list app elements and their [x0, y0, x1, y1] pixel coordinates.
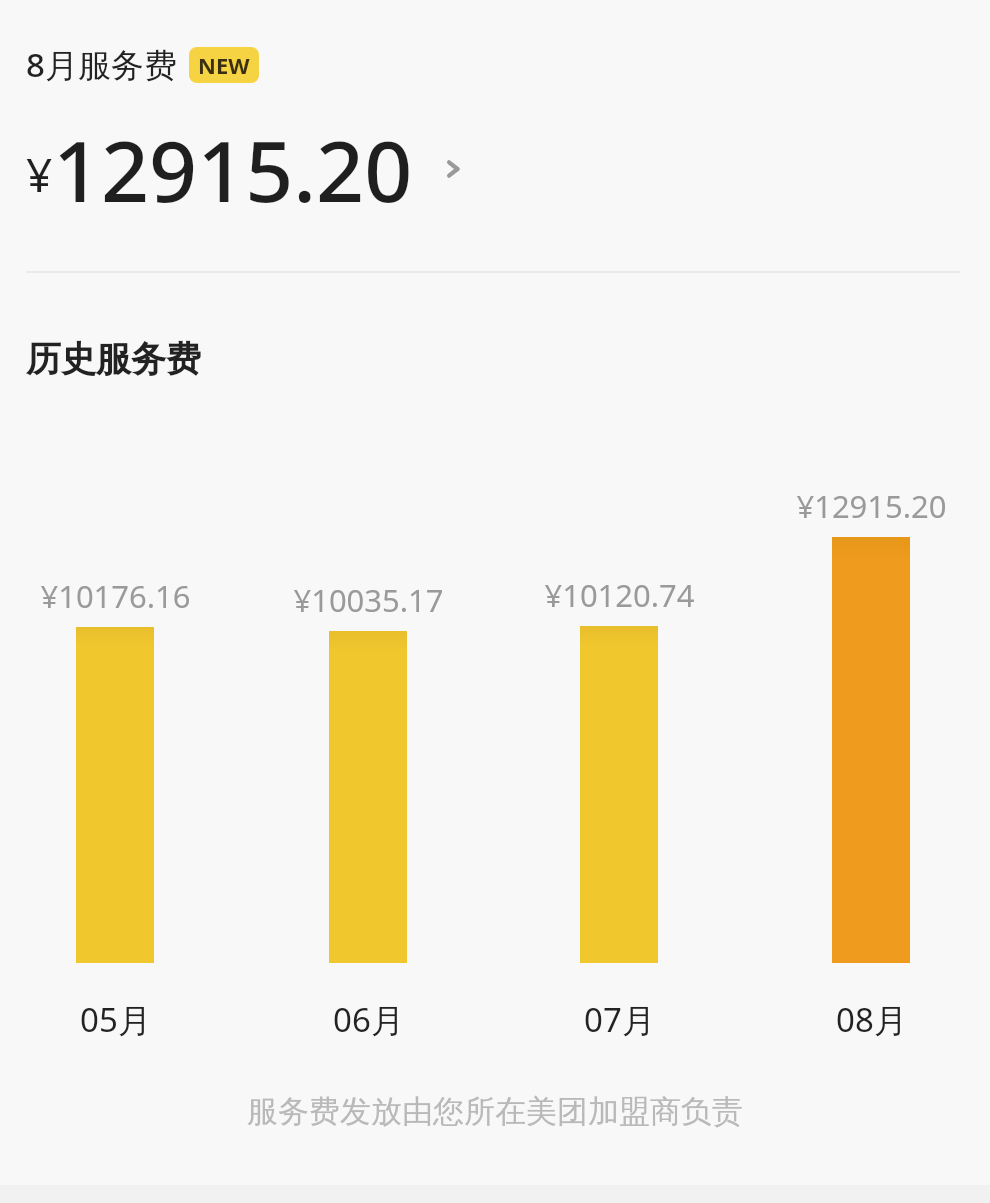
staticText: 06月 [333, 997, 404, 1042]
staticText: ¥12915.20 [796, 485, 947, 527]
staticText: ¥10176.16 [40, 575, 191, 617]
staticText: ¥ [26, 143, 53, 206]
staticText: 07月 [584, 997, 655, 1042]
staticText: 05月 [80, 997, 151, 1042]
staticText: ¥10120.74 [544, 574, 695, 616]
staticText: 12915.20 [53, 112, 413, 226]
staticText: 08月 [836, 997, 907, 1042]
staticText: 历史服务费 [26, 337, 201, 381]
staticText: 8月服务费 [26, 42, 177, 87]
button[interactable]: ¥ [22, 108, 485, 230]
staticText: ¥10035.17 [293, 579, 444, 621]
staticText: 服务费发放由您所在美团加盟商负责 [247, 1092, 743, 1131]
staticText: NEW [198, 50, 250, 80]
